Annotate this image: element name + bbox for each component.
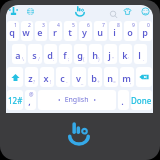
staticText: g bbox=[77, 49, 83, 61]
button[interactable]: Resize keyboard bbox=[8, 6, 19, 17]
staticText: ' bbox=[128, 56, 130, 63]
button[interactable]: u bbox=[94, 21, 107, 41]
staticText: s bbox=[32, 49, 37, 61]
staticText: + bbox=[97, 79, 100, 86]
staticText: l bbox=[138, 49, 141, 61]
staticText: : bbox=[53, 56, 55, 63]
button[interactable]: x bbox=[40, 67, 54, 87]
staticText: m bbox=[122, 72, 131, 84]
button[interactable]: Shift bbox=[7, 67, 23, 87]
staticText: ) bbox=[98, 56, 100, 63]
staticText: " bbox=[112, 56, 115, 63]
button[interactable]: o bbox=[124, 21, 137, 41]
staticText: Done bbox=[131, 95, 152, 106]
staticText: 7 bbox=[102, 22, 105, 29]
staticText: 1 bbox=[14, 22, 17, 29]
button[interactable]: i bbox=[109, 21, 122, 41]
staticText: \ bbox=[22, 56, 24, 63]
staticText: 9 bbox=[132, 22, 135, 29]
staticText: @ bbox=[29, 91, 34, 98]
button[interactable]: , bbox=[25, 90, 36, 110]
button[interactable]: b bbox=[88, 67, 102, 87]
staticText: - bbox=[66, 79, 68, 86]
button[interactable]: Search bbox=[109, 10, 118, 19]
button[interactable]: g bbox=[74, 44, 87, 64]
staticText: h bbox=[92, 49, 98, 61]
staticText: q bbox=[9, 26, 15, 38]
staticText: y bbox=[82, 26, 87, 38]
button[interactable]: j bbox=[104, 44, 117, 64]
staticText: j bbox=[108, 49, 111, 61]
button[interactable]: r bbox=[49, 21, 62, 41]
staticText: f bbox=[63, 49, 67, 61]
staticText: , bbox=[28, 95, 31, 107]
staticText: o bbox=[127, 26, 133, 38]
button[interactable]: Emoji bbox=[141, 7, 150, 16]
staticText: n bbox=[107, 72, 113, 84]
staticText: ( bbox=[83, 56, 85, 63]
button[interactable]: Backspace bbox=[136, 67, 152, 87]
button[interactable]: l bbox=[134, 44, 147, 64]
staticText: 0 bbox=[147, 22, 150, 29]
staticText: e bbox=[37, 26, 43, 38]
staticText: d bbox=[47, 49, 53, 61]
button[interactable]: Theme bbox=[123, 7, 132, 16]
staticText: x bbox=[43, 72, 49, 84]
staticText: t bbox=[68, 26, 72, 38]
button[interactable]: n bbox=[104, 67, 118, 87]
staticText: ; bbox=[68, 56, 70, 63]
button[interactable]: f bbox=[59, 44, 72, 64]
button[interactable]: m bbox=[120, 67, 134, 87]
button[interactable]: z bbox=[25, 67, 38, 87]
button[interactable]: w bbox=[21, 21, 33, 41]
staticText: 6 bbox=[87, 22, 90, 29]
staticText: 2 bbox=[28, 22, 31, 29]
button[interactable]: Done bbox=[131, 90, 152, 110]
staticText: . bbox=[143, 56, 145, 63]
staticText: = bbox=[113, 79, 116, 86]
staticText: c bbox=[60, 72, 65, 84]
staticText: b bbox=[91, 72, 97, 84]
staticText: , bbox=[130, 79, 132, 86]
staticText: ! bbox=[50, 79, 52, 86]
button[interactable]: k bbox=[119, 44, 132, 64]
button[interactable]: Language bbox=[25, 6, 36, 17]
staticText: . bbox=[121, 95, 124, 107]
staticText: i bbox=[113, 26, 116, 38]
staticText: 3 bbox=[42, 22, 45, 29]
staticText: 4 bbox=[57, 22, 60, 29]
staticText: 12# bbox=[8, 95, 23, 106]
button[interactable]: a bbox=[12, 44, 26, 64]
staticText: ? bbox=[33, 79, 36, 86]
button[interactable]: p bbox=[139, 21, 152, 41]
button[interactable]: . bbox=[118, 90, 129, 110]
button[interactable]: y bbox=[79, 21, 92, 41]
staticText: a bbox=[15, 49, 21, 61]
staticText: _ bbox=[81, 79, 84, 86]
button[interactable]: h bbox=[89, 44, 102, 64]
staticText: u bbox=[97, 26, 103, 38]
button[interactable]: t bbox=[64, 21, 77, 41]
staticText: k bbox=[122, 49, 128, 61]
staticText: w bbox=[22, 26, 30, 38]
button[interactable]: TouchPal menu bbox=[75, 6, 85, 16]
staticText: z bbox=[28, 72, 33, 84]
button[interactable]: v bbox=[72, 67, 86, 87]
button[interactable]: 12# bbox=[7, 90, 23, 110]
button[interactable]: English bbox=[38, 90, 116, 110]
staticText: p bbox=[142, 26, 148, 38]
staticText: English bbox=[61, 95, 93, 105]
button[interactable]: e bbox=[35, 21, 47, 41]
staticText: / bbox=[38, 56, 40, 63]
staticText: 8 bbox=[117, 22, 120, 29]
button[interactable]: c bbox=[56, 67, 70, 87]
staticText: 5 bbox=[72, 22, 75, 29]
button[interactable]: s bbox=[28, 44, 42, 64]
button[interactable]: q bbox=[7, 21, 19, 41]
staticText: r bbox=[53, 26, 57, 38]
button[interactable]: d bbox=[44, 44, 57, 64]
staticText: v bbox=[76, 72, 81, 84]
